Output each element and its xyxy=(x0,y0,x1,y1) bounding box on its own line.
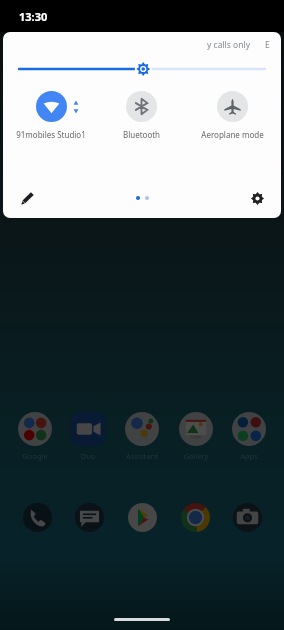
staticText: Apps xyxy=(226,451,272,461)
button[interactable]: Settings xyxy=(245,186,269,210)
button[interactable]: Chrome xyxy=(175,497,215,537)
button[interactable]: Messages xyxy=(69,497,109,537)
button[interactable]: Assistant xyxy=(119,412,165,461)
button[interactable]: Bluetooth xyxy=(96,91,187,140)
button[interactable]: 91mobiles Studio1 xyxy=(6,91,96,140)
button[interactable]: Phone xyxy=(17,497,57,537)
staticText: Google xyxy=(12,451,58,461)
staticText: y calls only xyxy=(207,39,250,51)
staticText: 13:30 xyxy=(19,9,48,24)
button[interactable]: Aeroplane mode xyxy=(187,91,278,140)
button[interactable]: Camera xyxy=(227,497,267,537)
staticText: Bluetooth xyxy=(96,129,187,140)
staticText: 91mobiles Studio1 xyxy=(6,129,96,140)
button[interactable]: Gallery xyxy=(173,412,219,461)
button[interactable]: Play Store xyxy=(122,497,162,537)
button[interactable]: Duo xyxy=(65,412,111,461)
staticText: Aeroplane mode xyxy=(187,129,278,140)
staticText: Assistant xyxy=(119,451,165,461)
staticText: E xyxy=(265,39,270,51)
button[interactable]: Google xyxy=(12,412,58,461)
staticText: Duo xyxy=(65,451,111,461)
staticText: Gallery xyxy=(173,451,219,461)
button[interactable]: Apps xyxy=(226,412,272,461)
button[interactable]: Edit tiles xyxy=(15,186,39,210)
button[interactable]: Brightness xyxy=(19,58,265,80)
